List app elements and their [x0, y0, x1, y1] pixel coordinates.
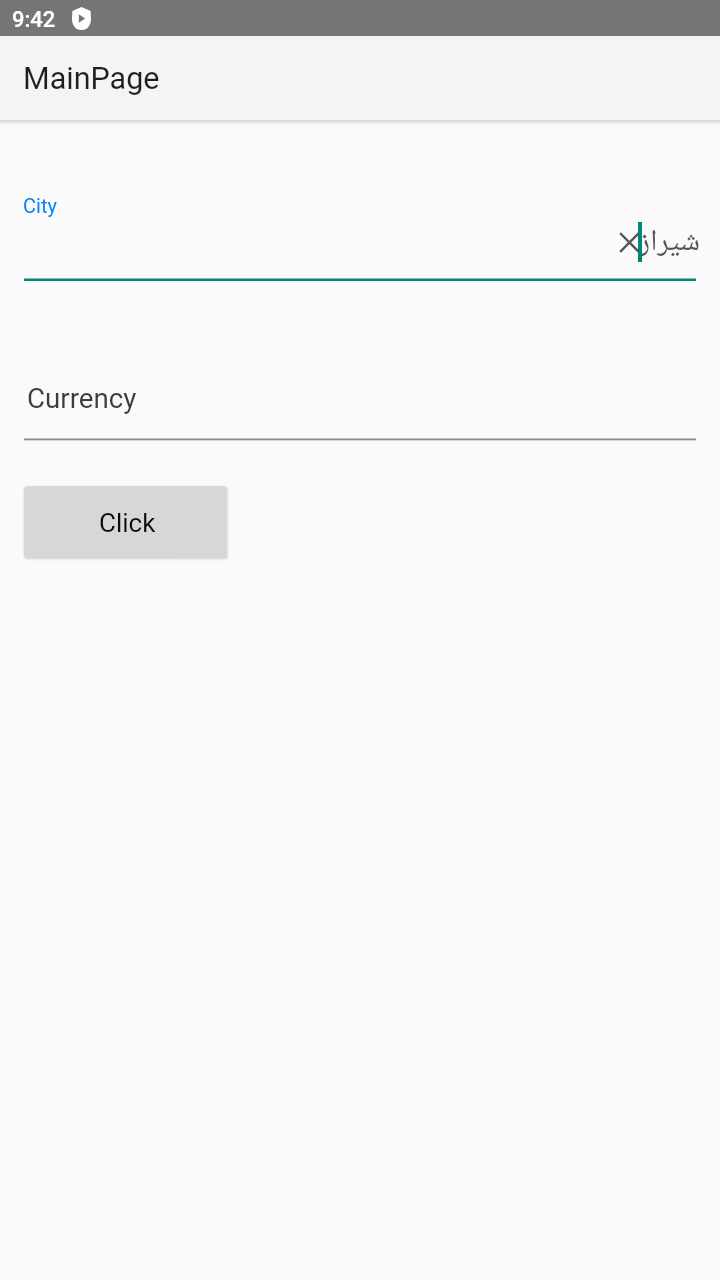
button[interactable]: Currency	[0, 370, 720, 444]
other: Protected	[72, 7, 91, 30]
staticText: 9:42	[12, 7, 56, 33]
staticText: شیراز	[24, 218, 700, 269]
staticText: MainPage	[23, 61, 160, 97]
button[interactable]: Clear city	[621, 234, 638, 251]
staticText: Currency	[27, 382, 137, 414]
button[interactable]: Click	[24, 486, 227, 558]
staticText: Click	[99, 508, 156, 538]
button[interactable]: City	[0, 185, 720, 285]
staticText: City	[23, 194, 57, 217]
